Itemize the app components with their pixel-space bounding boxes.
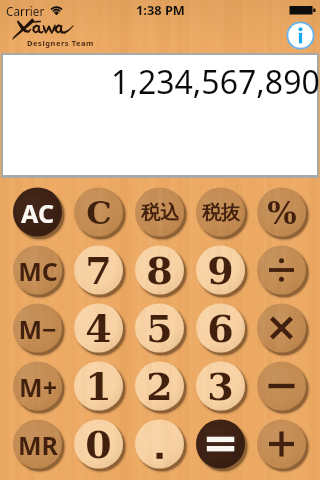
staticText: AC xyxy=(21,196,54,230)
button[interactable]: MR xyxy=(13,420,62,469)
button[interactable]: 1 xyxy=(74,362,123,411)
button[interactable]: C xyxy=(74,188,123,237)
button[interactable]: × xyxy=(257,304,306,353)
staticText: 5 xyxy=(146,306,173,351)
button[interactable]: M− xyxy=(13,304,62,353)
staticText: 7 xyxy=(85,248,112,293)
staticText: 1,234,567,890 xyxy=(111,60,320,104)
staticText: 1:38 PM xyxy=(136,1,185,18)
staticText: Designers Team xyxy=(27,38,94,48)
staticText: 8 xyxy=(146,248,173,293)
button[interactable]: M+ xyxy=(13,362,62,411)
button[interactable]: − xyxy=(257,362,306,411)
button[interactable]: 8 xyxy=(135,246,184,295)
staticText: 2 xyxy=(146,364,173,409)
staticText: 9 xyxy=(207,248,234,293)
staticText: 0 xyxy=(85,422,112,467)
button[interactable]: AC xyxy=(13,188,62,237)
button[interactable]: 0 xyxy=(74,420,123,469)
button[interactable]: 7 xyxy=(74,246,123,295)
staticText: 6 xyxy=(207,306,234,351)
staticText: MR xyxy=(18,428,58,462)
staticText: MC xyxy=(18,254,58,288)
button[interactable]: . xyxy=(135,420,184,469)
button[interactable]: % xyxy=(257,188,306,237)
staticText: 3 xyxy=(207,364,234,409)
staticText: 1 xyxy=(85,364,112,409)
staticText: C xyxy=(86,194,112,232)
staticText: 税込 xyxy=(141,201,179,225)
button[interactable]: 2 xyxy=(135,362,184,411)
button[interactable]: Info xyxy=(286,21,315,50)
button[interactable]: 4 xyxy=(74,304,123,353)
button[interactable]: 6 xyxy=(196,304,245,353)
button[interactable]: 3 xyxy=(196,362,245,411)
button[interactable]: ÷ xyxy=(257,246,306,295)
button[interactable]: 5 xyxy=(135,304,184,353)
button[interactable]: 税抜 xyxy=(196,188,245,237)
staticText: M+ xyxy=(19,370,57,404)
button[interactable]: MC xyxy=(13,246,62,295)
staticText: % xyxy=(267,195,297,231)
button[interactable]: 税込 xyxy=(135,188,184,237)
button[interactable]: + xyxy=(257,420,306,469)
staticText: 4 xyxy=(85,306,112,351)
staticText: Carrier xyxy=(6,3,45,19)
button[interactable]: = xyxy=(196,420,245,469)
staticText: 税抜 xyxy=(202,201,240,225)
staticText: M− xyxy=(18,312,57,346)
button[interactable]: 9 xyxy=(196,246,245,295)
